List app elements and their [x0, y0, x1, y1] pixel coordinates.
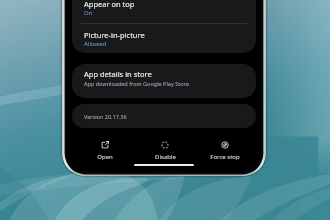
staticText: Appear on top [84, 0, 135, 9]
button[interactable]: Picture-in-picture [72, 23, 256, 53]
button[interactable]: Disable [137, 139, 193, 161]
staticText: On [84, 9, 93, 17]
button[interactable]: Open [77, 139, 133, 161]
staticText: Allowed [84, 40, 107, 48]
staticText: Picture-in-picture [84, 30, 145, 40]
staticText: App downloaded from Google Play Store [84, 80, 189, 87]
staticText: App details in store [84, 69, 152, 79]
button[interactable]: Force stop [197, 139, 253, 161]
staticText: Disable [155, 153, 176, 161]
staticText: Version 20.17.36 [84, 113, 127, 120]
button[interactable]: Appear on top [72, 0, 256, 23]
staticText: Open [97, 153, 113, 161]
button[interactable]: App details in store [72, 64, 256, 98]
staticText: Force stop [210, 153, 240, 161]
